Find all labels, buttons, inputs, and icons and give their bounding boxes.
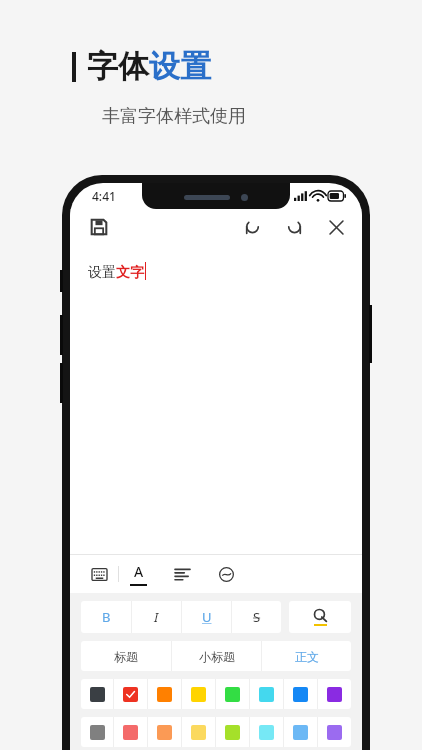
button[interactable]: Undo bbox=[238, 213, 266, 241]
button[interactable]: Close bbox=[322, 213, 350, 241]
staticText: U bbox=[202, 608, 212, 626]
staticText: S bbox=[253, 608, 261, 626]
staticText: 设置文字 bbox=[88, 264, 144, 282]
button[interactable]: Color 1 bbox=[81, 717, 113, 747]
button[interactable]: Color 8 bbox=[318, 717, 351, 747]
button[interactable]: Bold bbox=[81, 601, 131, 633]
staticText: A bbox=[134, 562, 144, 581]
button[interactable]: Insert bbox=[211, 559, 241, 589]
button[interactable]: Font style bbox=[123, 559, 153, 589]
staticText: I bbox=[154, 608, 159, 626]
button[interactable]: Align bbox=[167, 559, 197, 589]
button[interactable]: Color 3 bbox=[148, 679, 181, 709]
button[interactable]: Color 4 bbox=[182, 717, 215, 747]
button[interactable]: Save bbox=[84, 212, 114, 242]
staticText: 正文 bbox=[295, 649, 319, 664]
button[interactable]: Color 8 bbox=[318, 679, 351, 709]
button[interactable]: Keyboard bbox=[84, 559, 114, 589]
button[interactable]: Underline bbox=[182, 601, 231, 633]
button[interactable]: Color 7 bbox=[284, 679, 317, 709]
button[interactable]: Color 5 bbox=[216, 679, 249, 709]
button[interactable]: 小标题 bbox=[172, 641, 261, 671]
staticText: B bbox=[102, 608, 111, 626]
button[interactable]: Highlight color bbox=[289, 601, 351, 633]
button[interactable]: Color 2 bbox=[114, 717, 147, 747]
staticText: 字体设置 bbox=[87, 47, 211, 86]
button[interactable]: Strikethrough bbox=[232, 601, 281, 633]
button[interactable]: Color 2 bbox=[114, 679, 147, 709]
button[interactable]: Color 6 bbox=[250, 679, 283, 709]
button[interactable]: Color 3 bbox=[148, 717, 181, 747]
button[interactable]: Color 1 bbox=[81, 679, 113, 709]
staticText: 标题 bbox=[114, 649, 138, 664]
button[interactable]: 标题 bbox=[81, 641, 171, 671]
button[interactable]: Color 4 bbox=[182, 679, 215, 709]
staticText: 丰富字体样式使用 bbox=[102, 105, 246, 128]
button[interactable]: 正文 bbox=[262, 641, 351, 671]
staticText: 4:41 bbox=[92, 188, 116, 204]
button[interactable]: Redo bbox=[280, 213, 308, 241]
button[interactable]: Color 6 bbox=[250, 717, 283, 747]
button[interactable]: Italic bbox=[132, 601, 181, 633]
button[interactable]: Color 7 bbox=[284, 717, 317, 747]
button[interactable]: Color 5 bbox=[216, 717, 249, 747]
staticText: 小标题 bbox=[199, 649, 235, 664]
